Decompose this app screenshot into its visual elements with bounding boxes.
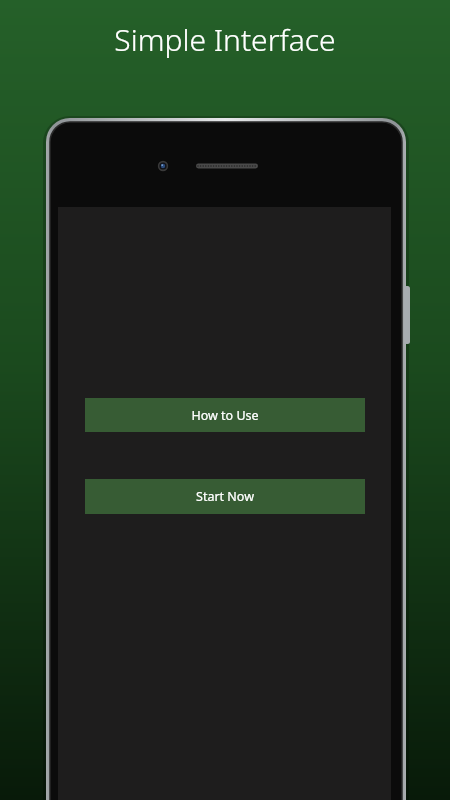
staticText: Start Now (196, 488, 254, 505)
staticText: Simple Interface (0, 19, 450, 800)
staticText: How to Use (191, 407, 259, 424)
button[interactable]: Start Now (85, 479, 365, 514)
button[interactable]: How to Use (85, 398, 365, 432)
